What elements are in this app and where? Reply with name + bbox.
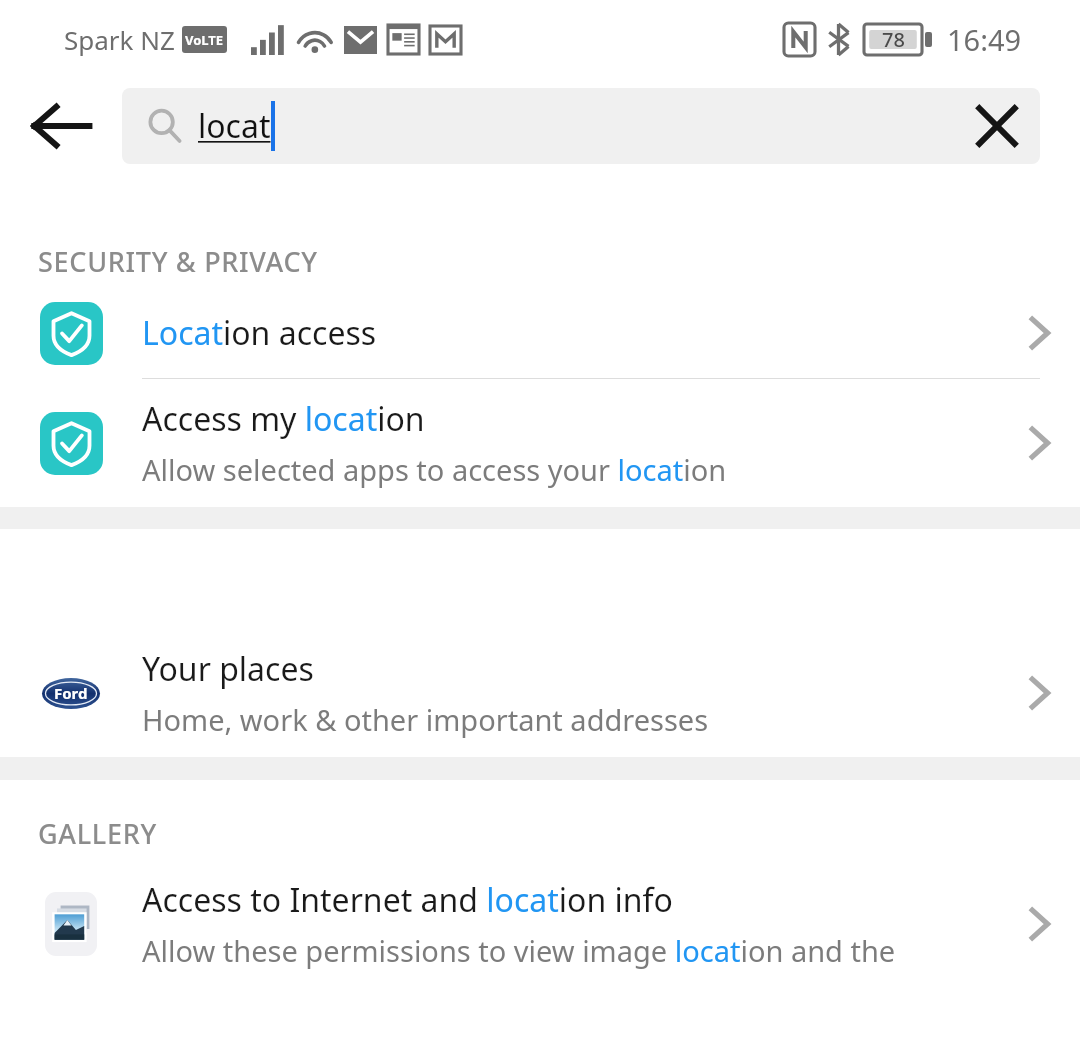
staticText: 16:49 bbox=[947, 20, 1022, 59]
staticText: Home, work & other important addresses bbox=[142, 700, 709, 739]
button[interactable]: Access to Internet and location info bbox=[0, 860, 1080, 988]
staticText: Your places bbox=[142, 647, 314, 691]
staticText: SECURITY & PRIVACY bbox=[38, 243, 318, 280]
button[interactable]: Location access bbox=[0, 288, 1080, 378]
button[interactable]: Back bbox=[0, 78, 122, 174]
staticText: Access my location bbox=[142, 397, 425, 441]
staticText: Spark NZ bbox=[64, 22, 175, 57]
button[interactable]: Clear search bbox=[954, 88, 1040, 164]
button[interactable]: Ford bbox=[0, 629, 1080, 757]
staticText: Ford bbox=[54, 683, 88, 703]
staticText: GALLERY bbox=[38, 815, 157, 852]
staticText: locat bbox=[198, 104, 271, 148]
staticText: VoLTE bbox=[185, 31, 224, 49]
button[interactable]: Access my location bbox=[0, 379, 1080, 507]
button[interactable]: locat bbox=[122, 88, 1040, 164]
staticText: Location access bbox=[142, 311, 377, 355]
staticText: Allow these permissions to view image lo… bbox=[142, 931, 896, 970]
staticText: Allow selected apps to access your locat… bbox=[142, 450, 727, 489]
staticText: Access to Internet and location info bbox=[142, 878, 673, 922]
staticText: 78 bbox=[882, 26, 905, 53]
